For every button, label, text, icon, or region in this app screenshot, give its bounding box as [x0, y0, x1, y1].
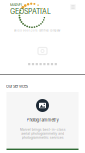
staticText: GEOSPATIAL	[10, 7, 51, 16]
staticText: MARVEL	[10, 3, 23, 7]
staticText: an ISO 9001:2015 certified company	[14, 29, 60, 32]
staticText: Our Services	[6, 84, 28, 89]
staticText: Marvel brings best-in-class aerial photo…	[19, 127, 65, 140]
staticText: Photogrammetry	[26, 117, 58, 122]
button[interactable]: Menu	[69, 3, 77, 11]
